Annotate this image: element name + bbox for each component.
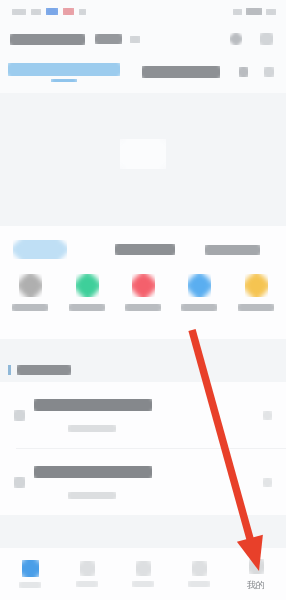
button[interactable]: Search: [226, 29, 246, 49]
staticText: 我的: [247, 579, 265, 590]
button[interactable]: [115, 244, 175, 255]
button[interactable]: [8, 56, 120, 88]
button[interactable]: 我的: [230, 559, 282, 590]
button[interactable]: More: [256, 29, 276, 49]
button[interactable]: Filter: [234, 63, 252, 81]
button[interactable]: [230, 274, 282, 311]
button[interactable]: [0, 382, 286, 448]
button[interactable]: [61, 274, 113, 311]
button[interactable]: Tab: [61, 561, 113, 587]
button[interactable]: [4, 274, 56, 311]
button[interactable]: Tab: [117, 561, 169, 587]
button[interactable]: Sort: [260, 63, 278, 81]
button[interactable]: [205, 245, 260, 255]
button[interactable]: [173, 274, 225, 311]
button[interactable]: [117, 274, 169, 311]
button[interactable]: [142, 56, 220, 88]
button[interactable]: [13, 240, 67, 259]
button[interactable]: Tab: [173, 561, 225, 587]
button[interactable]: [0, 449, 286, 515]
button[interactable]: Tab: [4, 560, 56, 588]
